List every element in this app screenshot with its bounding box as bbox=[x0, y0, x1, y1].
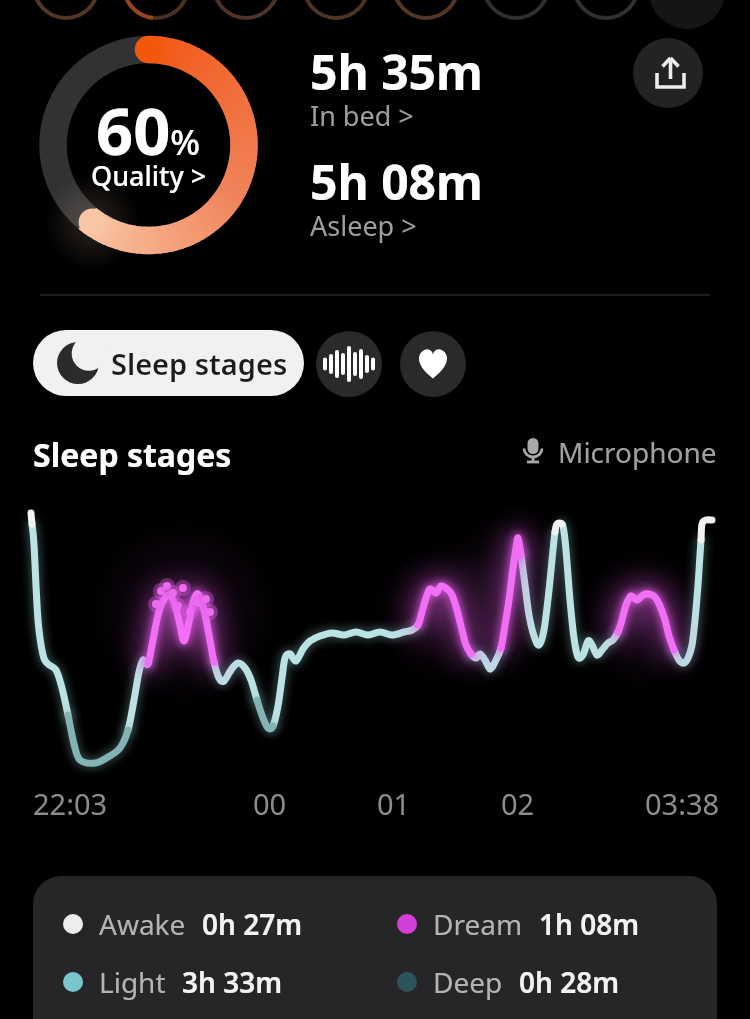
staticText: Quality > bbox=[91, 157, 207, 194]
staticText: 0h 28m bbox=[519, 963, 620, 1001]
staticText: Microphone bbox=[558, 433, 717, 471]
button[interactable]: Quality > bbox=[42, 157, 255, 194]
button[interactable]: Light bbox=[63, 963, 283, 1001]
staticText: Light bbox=[99, 963, 166, 1001]
staticText: 00 bbox=[253, 784, 287, 823]
staticText: 03:38 bbox=[645, 784, 720, 823]
button[interactable]: Awake bbox=[63, 905, 303, 943]
button[interactable]: Sleep stages bbox=[33, 330, 304, 396]
button[interactable]: Asleep > bbox=[310, 207, 417, 244]
button[interactable] bbox=[633, 38, 703, 108]
button[interactable] bbox=[316, 331, 382, 397]
staticText: Awake bbox=[99, 905, 186, 943]
button[interactable]: Deep bbox=[397, 963, 620, 1001]
button[interactable]: In bed > bbox=[310, 97, 414, 134]
staticText: Sleep stages bbox=[111, 344, 288, 383]
staticText: 60% bbox=[96, 86, 201, 175]
staticText: 02 bbox=[501, 784, 535, 823]
staticText: Dream bbox=[433, 905, 523, 943]
staticText: 0h 27m bbox=[202, 905, 303, 943]
button[interactable]: Dream bbox=[397, 905, 640, 943]
staticText: 1h 08m bbox=[539, 905, 640, 943]
staticText: 5h 35m bbox=[310, 39, 483, 104]
staticText: Deep bbox=[433, 963, 503, 1001]
staticText: Sleep stages bbox=[33, 433, 232, 477]
staticText: 3h 33m bbox=[182, 963, 283, 1001]
staticText: 01 bbox=[377, 784, 411, 823]
staticText: 22:03 bbox=[33, 784, 108, 823]
button[interactable] bbox=[400, 331, 466, 397]
staticText: 5h 08m bbox=[310, 149, 483, 214]
